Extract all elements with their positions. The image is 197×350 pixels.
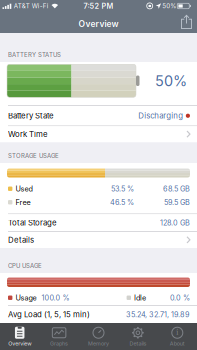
staticText: Memory — [88, 340, 109, 347]
staticText: 53.5 % — [111, 184, 134, 193]
staticText: Discharging — [138, 111, 183, 120]
staticText: Free — [15, 198, 30, 207]
staticText: Details — [129, 340, 146, 347]
staticText: Battery State — [8, 111, 54, 120]
staticText: 100.0 % — [41, 293, 69, 302]
staticText: AT&T Wi-Fi — [14, 2, 49, 10]
button[interactable]: Work Time — [0, 126, 197, 142]
staticText: 0.0 % — [170, 293, 190, 302]
staticText: 46.5 % — [110, 198, 134, 207]
staticText: Usage — [15, 293, 36, 302]
staticText: Graphs — [50, 340, 68, 347]
button[interactable]: Share — [181, 15, 197, 29]
button[interactable]: Memory — [79, 323, 118, 350]
staticText: Used — [15, 184, 32, 193]
button[interactable]: Details — [118, 323, 158, 350]
button[interactable]: Overview — [0, 323, 39, 350]
staticText: Details — [8, 235, 34, 245]
staticText: Avg Load (1, 5, 15 min) — [8, 310, 90, 319]
staticText: 35.24, 32.71, 19.89 — [126, 310, 190, 319]
staticText: 7:52 PM — [83, 2, 113, 10]
button[interactable]: i — [158, 323, 197, 350]
staticText: Work Time — [8, 129, 48, 139]
staticText: 68.5 GB — [163, 184, 190, 193]
staticText: Overview — [78, 19, 118, 29]
staticText: BATTERY STATUS — [8, 51, 61, 58]
staticText: i — [176, 328, 178, 337]
staticText: 50% — [162, 2, 176, 10]
staticText: CPU USAGE — [8, 262, 42, 269]
staticText: 128.0 GB — [160, 218, 190, 227]
button[interactable]: Details — [0, 232, 197, 248]
button[interactable]: Graphs — [39, 323, 79, 350]
staticText: Total Storage — [8, 218, 57, 227]
staticText: About — [170, 340, 185, 347]
staticText: Idle — [134, 293, 146, 302]
staticText: STORAGE USAGE — [8, 152, 59, 159]
staticText: 50% — [155, 72, 187, 90]
staticText: Overview — [8, 340, 31, 347]
staticText: 59.5 GB — [164, 198, 190, 207]
